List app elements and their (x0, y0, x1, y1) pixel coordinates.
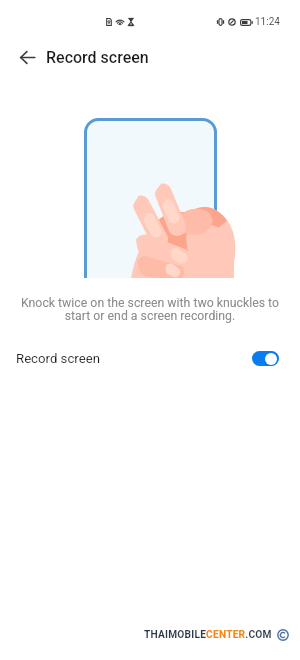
button[interactable]: Record screen (0, 338, 300, 378)
button[interactable]: Back (10, 40, 44, 74)
staticText: 11:24 (255, 16, 280, 28)
staticText: Record screen (16, 351, 100, 366)
staticText: Knock twice on the screen with two knuck… (16, 296, 284, 323)
staticText: Record screen (46, 48, 149, 67)
staticText: THAIMOBILECENTER.COM (144, 629, 272, 641)
